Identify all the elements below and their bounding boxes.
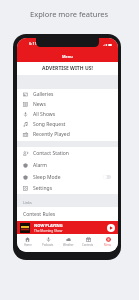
staticText: Sleep Mode [33,174,61,181]
button[interactable]: Recently Played [17,129,118,139]
button[interactable]: Home [17,234,38,250]
button[interactable]: Settings [17,183,118,194]
staticText: Contests [82,243,94,247]
staticText: Alarm [33,162,48,169]
button[interactable]: ADVERTISE WITH US! [17,62,118,75]
staticText: Contest Rules [23,211,56,218]
staticText: Menu [104,243,112,247]
staticText: Settings [33,185,53,192]
button[interactable]: Sleep Mode [17,171,118,183]
button[interactable]: Alarm [17,159,118,171]
button[interactable]: Weather [58,234,78,250]
staticText: Home [24,243,32,247]
button[interactable]: Contests [78,234,98,250]
staticText: Menu [62,54,73,59]
button[interactable]: Podcasts [38,234,58,250]
staticText: Weather [63,243,74,247]
button[interactable]: Contact Station [17,147,118,159]
staticText: Explore more features [30,9,109,19]
staticText: Contact Station [33,150,69,157]
staticText: Podcasts [42,243,54,247]
staticText: Links [23,200,32,205]
button[interactable]: All Shows [17,109,118,119]
button[interactable]: Menu [98,234,118,250]
button[interactable]: News [17,99,118,109]
button[interactable]: Play [107,224,115,232]
staticText: The Morning Show [34,229,63,233]
staticText: News [33,101,46,108]
staticText: ADVERTISE WITH US! [42,65,93,72]
staticText: Recently Played [33,131,70,138]
staticText: NOW PLAYING [34,223,63,228]
button[interactable]: Contest Rules [17,207,118,221]
staticText: Song Request [33,121,66,128]
button[interactable]: Galleries [17,89,118,99]
button[interactable]: Song Request [17,119,118,129]
staticText: All Shows [33,111,56,118]
staticText: Galleries [33,91,54,98]
staticText: 6:19 [29,41,37,46]
